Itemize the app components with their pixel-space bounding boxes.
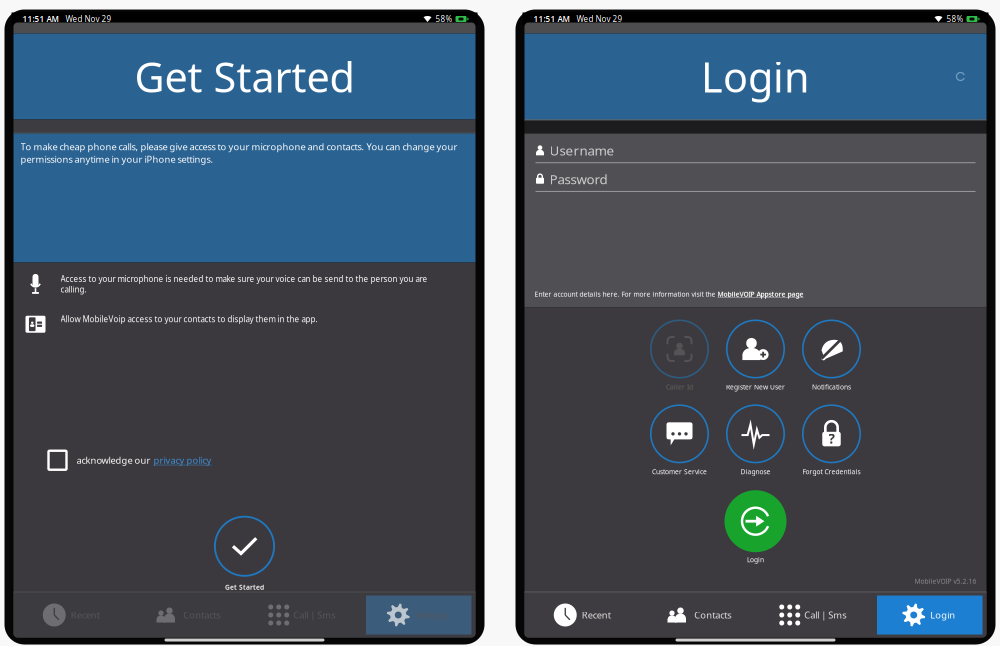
staticText: Wed Nov 29 — [576, 14, 622, 24]
staticText: 58% — [435, 14, 452, 24]
button[interactable]: Customer Service — [641, 404, 717, 476]
staticText: Call | Sms — [804, 609, 846, 621]
button[interactable]: Settings — [360, 592, 475, 637]
button[interactable]: Login — [724, 490, 786, 564]
staticText: 11:51 AM — [22, 14, 58, 24]
staticText: Login — [701, 49, 810, 104]
staticText: Recent — [71, 609, 100, 621]
staticText: Contacts — [694, 609, 731, 621]
staticText: Notifications — [812, 382, 851, 391]
button[interactable]: Call | Sms — [244, 592, 360, 637]
staticText: Register New User — [726, 382, 785, 391]
staticText: MobileVOIP Appstore page — [717, 290, 803, 298]
button[interactable]: Diagnose — [717, 404, 793, 476]
staticText: privacy policy — [153, 454, 211, 466]
button[interactable]: Call | Sms — [755, 592, 871, 637]
button[interactable]: Login — [871, 592, 986, 637]
button[interactable]: Notifications — [793, 319, 869, 391]
staticText: acknowledge our — [76, 454, 150, 466]
staticText: Customer Service — [652, 467, 707, 476]
staticText: Access to your microphone is needed to m… — [60, 273, 427, 295]
staticText: Login — [747, 555, 764, 564]
button[interactable]: Contacts — [129, 592, 244, 637]
staticText: Diagnose — [740, 467, 770, 476]
staticText: MobileVOIP v5.2.16 — [914, 577, 976, 585]
staticText: Contacts — [183, 609, 220, 621]
button[interactable]: ? — [793, 404, 869, 476]
staticText: Password — [549, 170, 607, 188]
staticText: To make cheap phone calls, please give a… — [20, 140, 457, 165]
staticText: Caller Id — [666, 382, 693, 391]
staticText: Settings — [415, 609, 449, 621]
staticText: Username — [549, 141, 614, 159]
staticText: Login — [930, 609, 955, 621]
staticText: 11:51 AM — [533, 14, 569, 24]
button[interactable]: Caller Id — [641, 319, 717, 391]
staticText: Wed Nov 29 — [65, 14, 111, 24]
button[interactable]: Recent — [13, 592, 129, 637]
button[interactable]: Contacts — [640, 592, 755, 637]
button[interactable]: Register New User — [717, 319, 793, 391]
staticText: Forgot Credentials — [802, 467, 860, 476]
staticText: Enter account details here. For more inf… — [534, 290, 717, 298]
staticText: Get Started — [134, 49, 354, 104]
staticText: Recent — [582, 609, 611, 621]
button[interactable]: Get Started — [214, 516, 275, 592]
button[interactable]: Recent — [524, 592, 640, 637]
staticText: Allow MobileVoip access to your contacts… — [60, 314, 317, 324]
button[interactable]: acknowledge our — [13, 451, 475, 470]
staticText: 58% — [946, 14, 963, 24]
staticText: ? — [828, 430, 834, 447]
staticText: Get Started — [225, 583, 264, 592]
staticText: Call | Sms — [293, 609, 335, 621]
